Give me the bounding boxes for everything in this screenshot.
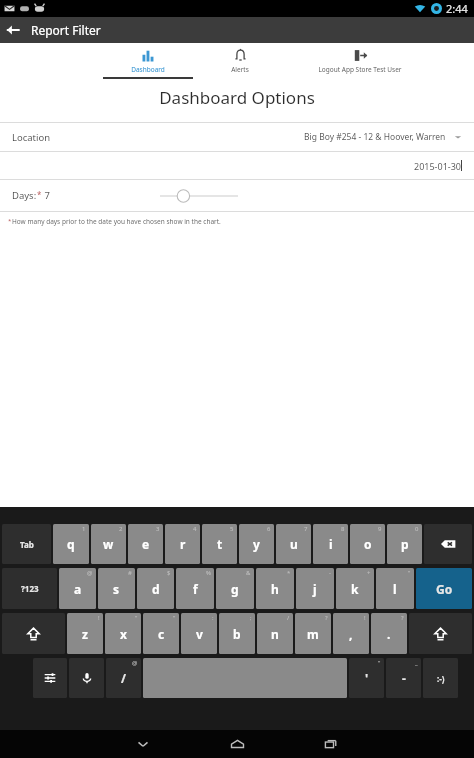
- staticText: 4: [193, 525, 197, 533]
- button[interactable]: -: [386, 658, 421, 698]
- button[interactable]: Dashboard: [96, 43, 200, 80]
- button[interactable]: mic: [69, 658, 104, 698]
- button[interactable]: r: [165, 524, 200, 564]
- button[interactable]: Logout App Store Test User: [280, 43, 440, 80]
- staticText: !: [364, 614, 366, 622]
- staticText: 6: [267, 525, 271, 533]
- button[interactable]: w: [91, 524, 126, 564]
- staticText: d: [152, 581, 160, 597]
- button[interactable]: j: [296, 568, 334, 609]
- staticText: ': [365, 670, 369, 686]
- button[interactable]: shift: [2, 613, 65, 654]
- button[interactable]: s: [98, 568, 135, 609]
- staticText: 1: [82, 525, 86, 533]
- button[interactable]: Go: [416, 568, 472, 609]
- button[interactable]: b: [219, 613, 255, 654]
- staticText: _: [415, 659, 418, 667]
- staticText: Go: [436, 581, 453, 597]
- staticText: r: [180, 536, 186, 552]
- button[interactable]: n: [257, 613, 293, 654]
- button[interactable]: d: [137, 568, 174, 609]
- button[interactable]: f: [176, 568, 214, 609]
- staticText: Report Filter: [31, 22, 101, 38]
- staticText: o: [364, 536, 372, 552]
- button[interactable]: v: [181, 613, 217, 654]
- button[interactable]: Home: [217, 732, 257, 756]
- staticText: Logout App Store Test User: [318, 65, 402, 74]
- staticText: Dashboard Options: [0, 86, 474, 109]
- button[interactable]: q: [53, 524, 89, 564]
- button[interactable]: h: [256, 568, 294, 609]
- staticText: g: [231, 581, 239, 597]
- button[interactable]: :-): [423, 658, 458, 698]
- staticText: ": [408, 569, 411, 577]
- staticText: j: [313, 581, 317, 597]
- staticText: +: [367, 569, 371, 577]
- button[interactable]: del: [424, 524, 472, 564]
- staticText: 5: [230, 525, 234, 533]
- button[interactable]: m: [295, 613, 331, 654]
- staticText: ": [135, 614, 138, 622]
- button[interactable]: c: [143, 613, 179, 654]
- button[interactable]: Alerts: [200, 43, 280, 80]
- staticText: x: [120, 626, 127, 642]
- staticText: -: [402, 670, 406, 686]
- staticText: k: [351, 581, 359, 597]
- staticText: Dashboard: [131, 65, 165, 74]
- staticText: f: [193, 581, 198, 597]
- staticText: #: [128, 569, 132, 577]
- staticText: /: [121, 670, 126, 686]
- staticText: Big Boy #254 - 12 & Hoover, Warren: [304, 131, 446, 143]
- staticText: @: [87, 569, 93, 577]
- button[interactable]: e: [128, 524, 163, 564]
- button[interactable]: Back: [0, 17, 26, 43]
- button[interactable]: shift: [409, 613, 472, 654]
- staticText: m: [307, 626, 319, 642]
- staticText: 0: [415, 525, 419, 533]
- button[interactable]: ?123: [2, 568, 57, 609]
- button[interactable]: Hide keyboard: [123, 732, 163, 756]
- button[interactable]: u: [276, 524, 311, 564]
- button[interactable]: Recents: [311, 732, 351, 756]
- staticText: !: [98, 614, 100, 622]
- button[interactable]: Location: [0, 123, 474, 151]
- staticText: 2: [119, 525, 123, 533]
- staticText: b: [233, 626, 241, 642]
- button[interactable]: i: [313, 524, 348, 564]
- button[interactable]: y: [239, 524, 274, 564]
- button[interactable]: t: [202, 524, 237, 564]
- button[interactable]: g: [216, 568, 254, 609]
- button[interactable]: o: [350, 524, 385, 564]
- staticText: i: [329, 536, 333, 552]
- button[interactable]: /: [106, 658, 141, 698]
- staticText: Location: [12, 131, 51, 144]
- staticText: 8: [341, 525, 345, 533]
- button[interactable]: 2015-01-30: [0, 152, 474, 179]
- staticText: p: [401, 536, 409, 552]
- staticText: :-): [437, 673, 445, 684]
- staticText: &: [246, 569, 251, 577]
- button[interactable]: ': [349, 658, 384, 698]
- button[interactable]: settings: [33, 658, 67, 698]
- staticText: 7: [42, 189, 50, 202]
- staticText: c: [158, 626, 165, 642]
- staticText: Tab: [20, 539, 34, 550]
- button[interactable]: z: [67, 613, 103, 654]
- button[interactable]: ,: [333, 613, 369, 654]
- button[interactable]: l: [376, 568, 414, 609]
- button[interactable]: p: [387, 524, 422, 564]
- staticText: @: [132, 659, 138, 667]
- button[interactable]: [160, 186, 238, 206]
- staticText: ": [173, 614, 176, 622]
- staticText: How many days prior to the date you have…: [12, 217, 221, 226]
- button[interactable]: a: [59, 568, 96, 609]
- staticText: l: [393, 581, 397, 597]
- staticText: 3: [156, 525, 160, 533]
- staticText: h: [271, 581, 279, 597]
- staticText: 2:44: [446, 1, 468, 16]
- button[interactable]: x: [105, 613, 141, 654]
- button[interactable]: Tab: [2, 524, 51, 564]
- button[interactable]: .: [371, 613, 407, 654]
- button[interactable]: k: [336, 568, 374, 609]
